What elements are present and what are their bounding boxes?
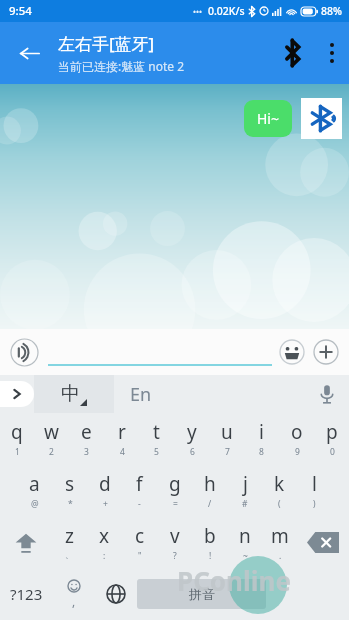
staticText: d	[99, 471, 111, 497]
staticText: z	[65, 523, 74, 549]
staticText: u	[221, 419, 233, 445]
staticText: .	[279, 550, 282, 562]
button[interactable]: Bluetooth	[271, 22, 315, 84]
button[interactable]: h	[192, 464, 227, 516]
staticText: #	[242, 498, 248, 510]
button[interactable]: Emoji	[53, 568, 95, 620]
staticText: 8	[259, 446, 264, 458]
staticText: v	[170, 523, 180, 549]
staticText: 、	[65, 550, 74, 561]
staticText: "	[138, 550, 142, 562]
staticText: !	[209, 550, 212, 562]
staticText: a	[29, 471, 40, 497]
button[interactable]: k	[262, 464, 297, 516]
button[interactable]: Shift	[0, 516, 52, 568]
button[interactable]: s	[52, 464, 87, 516]
staticText: 5	[154, 446, 159, 458]
button[interactable]	[48, 329, 272, 375]
staticText: •••	[193, 6, 203, 17]
staticText: /	[208, 498, 212, 510]
button[interactable]: n	[227, 516, 262, 568]
staticText: 9	[295, 446, 300, 458]
button[interactable]: v	[157, 516, 192, 568]
button[interactable]: Switch language	[95, 568, 137, 620]
button[interactable]: Back	[0, 22, 58, 84]
staticText: 1	[15, 446, 20, 458]
button[interactable]: f	[122, 464, 157, 516]
staticText: En	[130, 382, 152, 407]
button[interactable]: t	[139, 413, 174, 464]
button[interactable]: u	[209, 413, 244, 464]
staticText: g	[169, 471, 181, 497]
staticText: =	[173, 498, 178, 510]
button[interactable]: Voice message	[9, 337, 39, 367]
button[interactable]	[266, 568, 349, 620]
staticText: 当前已连接:魅蓝 note 2	[58, 58, 185, 74]
staticText: r	[118, 419, 126, 445]
staticText: 中	[61, 382, 80, 406]
button[interactable]	[301, 98, 342, 139]
button[interactable]: y	[174, 413, 209, 464]
staticText: ?123	[10, 584, 43, 604]
staticText: c	[135, 523, 145, 549]
staticText: (	[278, 498, 281, 510]
staticText: o	[291, 419, 303, 445]
button[interactable]: Voice input	[305, 375, 349, 413]
button[interactable]: i	[244, 413, 279, 464]
staticText: x	[99, 523, 110, 549]
button[interactable]: Backspace	[297, 516, 349, 568]
staticText: 88%	[321, 4, 342, 18]
button[interactable]: More options	[315, 22, 349, 84]
staticText: Hi~	[257, 109, 279, 128]
button[interactable]: m	[262, 516, 297, 568]
staticText: b	[204, 523, 216, 549]
staticText: m	[271, 523, 289, 549]
button[interactable]: Expand toolbar	[0, 381, 34, 407]
staticText: ~	[243, 550, 248, 562]
staticText: t	[153, 419, 160, 445]
button[interactable]: x	[87, 516, 122, 568]
staticText: y	[187, 419, 197, 445]
button[interactable]: Hi~	[257, 109, 279, 128]
button[interactable]: q	[0, 413, 34, 464]
button[interactable]: e	[69, 413, 104, 464]
button[interactable]: b	[192, 516, 227, 568]
button[interactable]: z	[52, 516, 87, 568]
staticText: -	[138, 498, 141, 510]
button[interactable]: j	[227, 464, 262, 516]
staticText: 0	[330, 446, 335, 458]
button[interactable]: En	[114, 375, 305, 413]
staticText: 左右手[蓝牙]	[58, 32, 155, 55]
staticText: h	[204, 471, 216, 497]
staticText: *	[68, 498, 73, 510]
button[interactable]: g	[157, 464, 192, 516]
staticText: 2	[49, 446, 54, 458]
staticText: s	[65, 471, 75, 497]
staticText: 4	[120, 446, 125, 458]
button[interactable]: r	[104, 413, 139, 464]
staticText: )	[313, 498, 316, 510]
button[interactable]: More	[312, 338, 340, 366]
staticText: 9:54	[9, 3, 32, 19]
button[interactable]: Emoji	[278, 338, 306, 366]
staticText: 7	[225, 446, 230, 458]
button[interactable]: d	[87, 464, 122, 516]
staticText: k	[274, 471, 285, 497]
button[interactable]: l	[297, 464, 332, 516]
staticText: 3	[84, 446, 89, 458]
staticText: :	[103, 550, 106, 562]
button[interactable]: c	[122, 516, 157, 568]
staticText: n	[239, 523, 251, 549]
staticText: q	[11, 419, 23, 445]
staticText: 6	[190, 446, 195, 458]
button[interactable]: o	[279, 413, 314, 464]
button[interactable]: ?123	[0, 568, 53, 620]
staticText: +	[103, 498, 108, 510]
staticText: f	[136, 471, 143, 497]
button[interactable]: w	[34, 413, 69, 464]
staticText: j	[243, 471, 248, 497]
button[interactable]: p	[314, 413, 349, 464]
button[interactable]: 拼音	[137, 579, 266, 609]
button[interactable]: a	[17, 464, 52, 516]
button[interactable]: 中	[34, 375, 114, 413]
